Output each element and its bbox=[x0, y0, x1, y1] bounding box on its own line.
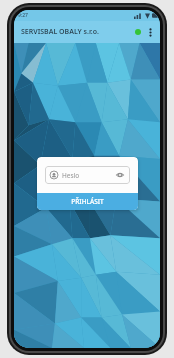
button[interactable]: Show password bbox=[115, 170, 125, 180]
staticText: Heslo bbox=[62, 171, 80, 180]
button[interactable]: Connection status bbox=[132, 26, 144, 38]
staticText: PŘIHLÁSIT bbox=[71, 197, 104, 206]
button[interactable]: PŘIHLÁSIT bbox=[37, 193, 138, 210]
staticText: SERVISBAL OBALY s.r.o. bbox=[21, 27, 100, 37]
button[interactable]: More options bbox=[144, 26, 156, 38]
staticText: 9:27 bbox=[18, 12, 28, 19]
button[interactable]: Heslo bbox=[45, 166, 130, 184]
